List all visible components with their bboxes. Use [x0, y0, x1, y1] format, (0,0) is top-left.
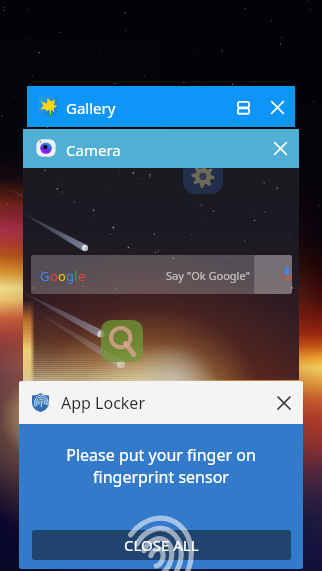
staticText: o — [58, 267, 66, 285]
staticText: App Locker — [61, 392, 145, 414]
staticText: CLOSE ALL — [124, 535, 199, 555]
staticText: e — [78, 267, 86, 285]
staticText: Please put your finger on fingerprint se… — [19, 444, 303, 488]
button[interactable]: Close dialog — [270, 389, 298, 417]
button[interactable]: G — [31, 255, 292, 294]
staticText: g — [66, 267, 74, 285]
staticText: l — [74, 267, 78, 285]
button[interactable]: Close Camera — [267, 135, 294, 162]
staticText: Gallery — [66, 98, 116, 118]
button[interactable]: CLOSE ALL — [32, 530, 291, 560]
button[interactable]: G — [23, 168, 299, 380]
button[interactable]: Close Gallery — [264, 94, 291, 121]
staticText: Say "Ok Google" — [166, 268, 250, 283]
staticText: o — [50, 267, 58, 285]
button[interactable]: Camera — [23, 129, 299, 168]
staticText: G — [40, 267, 50, 285]
button[interactable]: Gallery — [27, 86, 295, 127]
button[interactable]: Split screen — [230, 94, 257, 121]
staticText: Camera — [66, 140, 121, 160]
